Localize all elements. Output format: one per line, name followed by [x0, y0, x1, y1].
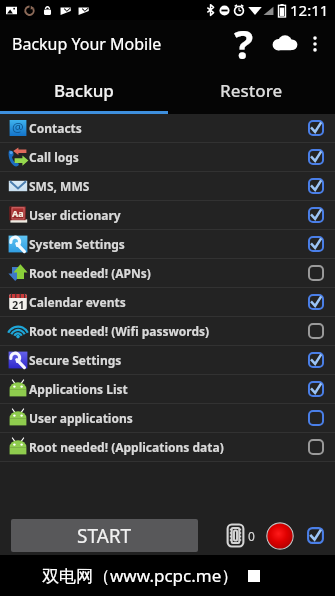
button[interactable]: Cloud backup — [266, 20, 303, 68]
button[interactable]: Help — [222, 20, 266, 68]
staticText: Restore — [220, 79, 283, 102]
staticText: Call logs — [29, 149, 79, 165]
button[interactable]: Root needed! (APNs) — [0, 259, 335, 287]
staticText: Applications List — [29, 381, 128, 397]
button[interactable]: More options — [303, 20, 327, 68]
button[interactable]: Call logs — [0, 143, 335, 171]
button[interactable]: START — [11, 519, 198, 552]
button[interactable]: Root needed! (Wifi passwords) — [0, 317, 335, 345]
staticText: 双电网（www.pcpc.me） — [42, 564, 239, 587]
staticText: @ — [12, 118, 24, 136]
button[interactable]: Restore — [167, 68, 335, 114]
button[interactable]: @ — [0, 114, 335, 142]
button[interactable]: Select all — [306, 526, 325, 545]
staticText: User dictionary — [29, 207, 121, 223]
staticText: Contacts — [29, 120, 82, 136]
staticText: ? — [234, 16, 254, 64]
staticText: User applications — [29, 410, 133, 426]
staticText: START — [77, 523, 132, 549]
staticText: Secure Settings — [29, 352, 122, 368]
staticText: Backup Your Mobile — [12, 33, 162, 55]
button[interactable]: Record — [266, 522, 294, 550]
staticText: Root needed! (Wifi passwords) — [29, 323, 210, 339]
button[interactable]: System Settings — [0, 230, 335, 258]
staticText: 12:11 — [290, 0, 329, 20]
staticText: 21 — [12, 297, 25, 312]
staticText: SMS, MMS — [29, 178, 90, 194]
button[interactable]: Secure Settings — [0, 346, 335, 374]
staticText: Backup — [54, 79, 114, 102]
staticText: Calendar events — [29, 294, 126, 310]
staticText: System Settings — [29, 236, 125, 252]
button[interactable]: Root needed! (Applications data) — [0, 433, 335, 461]
staticText: 0 — [248, 528, 255, 544]
staticText: Root needed! (Applications data) — [29, 439, 224, 455]
button[interactable]: 21 — [0, 288, 335, 316]
button[interactable]: Aa — [0, 201, 335, 229]
button[interactable]: Backup — [0, 68, 167, 114]
button[interactable]: User applications — [0, 404, 335, 432]
staticText: Root needed! (APNs) — [29, 265, 151, 281]
staticText: Aa — [12, 207, 24, 219]
button[interactable]: Applications List — [0, 375, 335, 403]
button[interactable]: SMS, MMS — [0, 172, 335, 200]
